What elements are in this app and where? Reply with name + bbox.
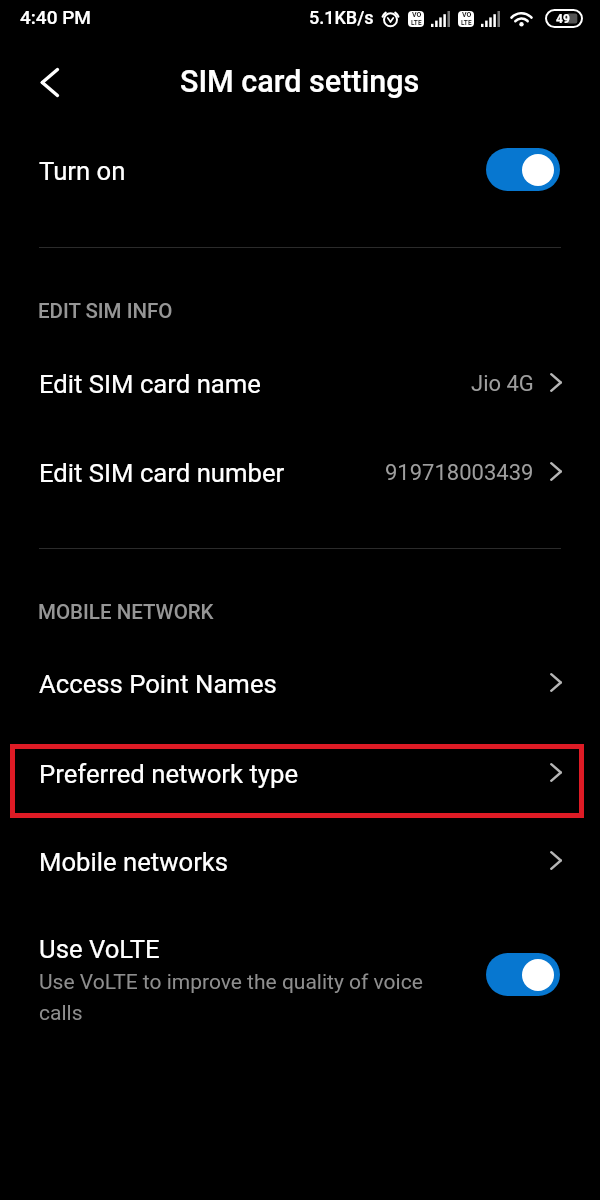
staticText: 919718003439 xyxy=(385,460,534,486)
staticText: 4:40 PM xyxy=(20,6,91,28)
button[interactable]: Back xyxy=(26,59,72,105)
staticText: 49 xyxy=(556,12,570,26)
button[interactable]: Edit SIM card name xyxy=(0,340,600,428)
staticText: Use VoLTE xyxy=(39,934,160,964)
button[interactable]: Preferred network type xyxy=(0,730,600,818)
staticText: LTE xyxy=(461,19,472,27)
button[interactable]: Edit SIM card number xyxy=(0,429,600,517)
staticText: SIM card settings xyxy=(180,64,420,100)
button[interactable]: Use VoLTE xyxy=(0,917,600,1029)
button[interactable]: Toggle xyxy=(486,148,560,191)
staticText: VO xyxy=(412,11,422,19)
staticText: VO xyxy=(462,11,472,19)
staticText: Turn on xyxy=(39,156,126,186)
staticText: EDIT SIM INFO xyxy=(38,299,173,323)
staticText: Access Point Names xyxy=(39,669,277,699)
staticText: Mobile networks xyxy=(39,847,229,877)
staticText: Jio 4G xyxy=(471,371,534,397)
staticText: LTE xyxy=(411,19,422,27)
staticText: Edit SIM card number xyxy=(39,458,285,488)
staticText: Edit SIM card name xyxy=(39,369,261,399)
staticText: Preferred network type xyxy=(39,759,299,789)
button[interactable]: Access Point Names xyxy=(0,640,600,728)
button[interactable]: Turn on xyxy=(0,127,600,215)
button[interactable]: Mobile networks xyxy=(0,818,600,906)
staticText: MOBILE NETWORK xyxy=(38,600,214,624)
button[interactable]: Toggle xyxy=(486,953,560,996)
staticText: Use VoLTE to improve the quality of voic… xyxy=(39,970,449,1025)
staticText: 5.1KB/s xyxy=(309,7,374,28)
